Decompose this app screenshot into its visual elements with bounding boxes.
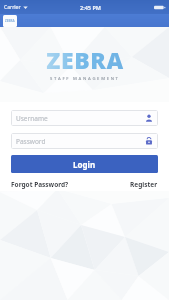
- button[interactable]: Password: [11, 133, 158, 149]
- staticText: Forgot Password?: [11, 180, 69, 189]
- button[interactable]: Login: [11, 155, 158, 173]
- staticText: 2:45 PM: [80, 4, 101, 11]
- staticText: Username: [16, 114, 48, 123]
- staticText: Carrier: [4, 4, 21, 11]
- staticText: Register: [130, 180, 158, 189]
- staticText: ZEBRA: [46, 44, 124, 75]
- staticText: S T A F F M A N A G E M E N T: [50, 76, 119, 82]
- staticText: Login: [73, 159, 96, 170]
- staticText: Password: [16, 137, 46, 146]
- button[interactable]: App logo: [3, 15, 17, 27]
- button[interactable]: Username: [11, 110, 158, 126]
- staticText: ZEBRA: [5, 19, 15, 23]
- other: Password: [145, 137, 153, 145]
- other: Username: [145, 114, 153, 122]
- button[interactable]: Forgot Password?: [11, 179, 69, 190]
- button[interactable]: Register: [130, 179, 158, 190]
